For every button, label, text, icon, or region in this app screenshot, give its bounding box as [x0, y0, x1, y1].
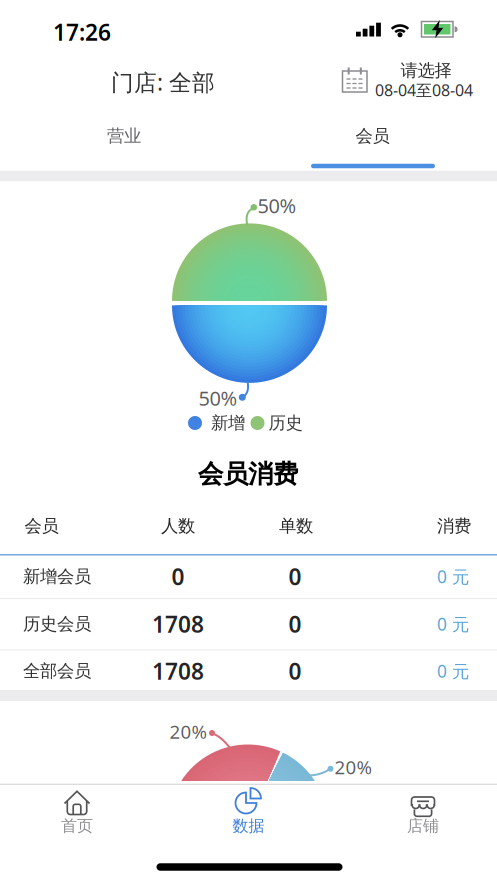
button[interactable]: 0 元	[437, 659, 469, 682]
staticText: 门店: 全部	[111, 67, 215, 97]
staticText: 08-04至08-04	[375, 79, 473, 101]
staticText: 17:26	[53, 17, 111, 47]
staticText: 0	[288, 609, 301, 639]
staticText: 会员	[355, 125, 389, 147]
staticText: 首页	[61, 816, 93, 836]
staticText: 店铺	[407, 816, 439, 836]
staticText: 历史	[268, 412, 302, 434]
staticText: 请选择	[400, 60, 451, 81]
staticText: 数据	[232, 816, 264, 836]
staticText: 消费	[437, 515, 471, 537]
staticText: 全部会员	[23, 660, 91, 682]
staticText: 历史会员	[23, 613, 91, 635]
staticText: 20%	[169, 719, 207, 744]
staticText: 0 元	[437, 565, 469, 588]
staticText: 新增会员	[23, 566, 91, 587]
button[interactable]: 店铺	[368, 780, 478, 844]
staticText: 0	[288, 656, 301, 686]
staticText: 人数	[161, 515, 195, 537]
staticText: 50%	[198, 385, 237, 411]
staticText: 单数	[279, 515, 313, 537]
staticText: 20%	[334, 755, 372, 779]
button[interactable]: 营业	[0, 114, 248, 158]
staticText: 会员消费	[198, 458, 298, 489]
staticText: 营业	[107, 125, 141, 147]
staticText: 1708	[152, 609, 204, 639]
button[interactable]: 0 元	[437, 612, 469, 635]
button[interactable]: 请选择	[338, 54, 478, 106]
button[interactable]: 会员	[248, 114, 496, 158]
staticText: 1708	[152, 656, 204, 686]
staticText: 0 元	[437, 612, 469, 635]
staticText: 0	[171, 561, 184, 591]
button[interactable]: 首页	[22, 780, 132, 844]
button[interactable]: 数据	[193, 780, 303, 844]
staticText: 新增	[211, 412, 245, 434]
staticText: 50%	[257, 192, 296, 219]
button[interactable]: 门店: 全部	[93, 60, 233, 104]
staticText: 会员	[24, 515, 58, 537]
button[interactable]: 0 元	[437, 565, 469, 588]
staticText: 0	[288, 561, 301, 591]
staticText: 0 元	[437, 659, 469, 682]
